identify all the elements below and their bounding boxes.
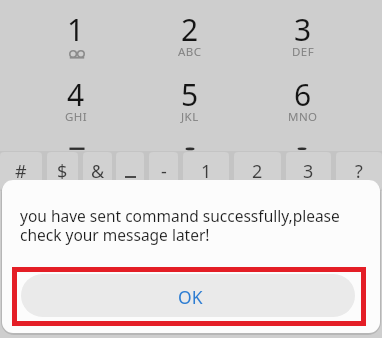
staticText: & (91, 159, 105, 184)
staticText: you have sent command successfully,pleas… (20, 205, 362, 245)
staticText: GHI (65, 109, 88, 125)
button[interactable]: 5 (150, 74, 230, 130)
staticText: 1 (67, 9, 85, 50)
staticText: JKL (181, 109, 199, 125)
staticText: - (161, 159, 167, 184)
button[interactable]: 2 (234, 152, 281, 191)
staticText: 1 (201, 159, 212, 184)
button[interactable]: 3 (286, 152, 331, 191)
staticText: ABC (178, 44, 202, 60)
staticText: 5 (181, 74, 199, 115)
button[interactable]: 1 (36, 9, 116, 65)
button[interactable]: & (83, 152, 112, 191)
button[interactable]: 3 (263, 9, 343, 65)
staticText: OK (178, 285, 203, 309)
button[interactable]: 2 (150, 9, 230, 65)
staticText: ? (355, 159, 363, 184)
staticText: $ (57, 159, 68, 184)
button[interactable]: 4 (36, 74, 116, 130)
button[interactable]: 1 (183, 152, 229, 191)
staticText: 2 (181, 9, 199, 50)
staticText: 6 (294, 74, 312, 115)
staticText: DEF (292, 44, 315, 60)
button[interactable] (116, 152, 144, 191)
button[interactable]: - (149, 152, 178, 191)
staticText: 4 (67, 74, 85, 115)
button[interactable]: 6 (263, 74, 343, 130)
staticText: 3 (294, 9, 312, 50)
staticText: 3 (303, 159, 314, 184)
staticText: MNO (288, 109, 318, 125)
button[interactable]: ? (336, 152, 382, 191)
button[interactable]: # (0, 152, 42, 191)
button[interactable]: $ (47, 152, 78, 191)
staticText: 2 (252, 159, 263, 184)
staticText: # (15, 159, 27, 184)
button[interactable]: OK (21, 274, 355, 317)
